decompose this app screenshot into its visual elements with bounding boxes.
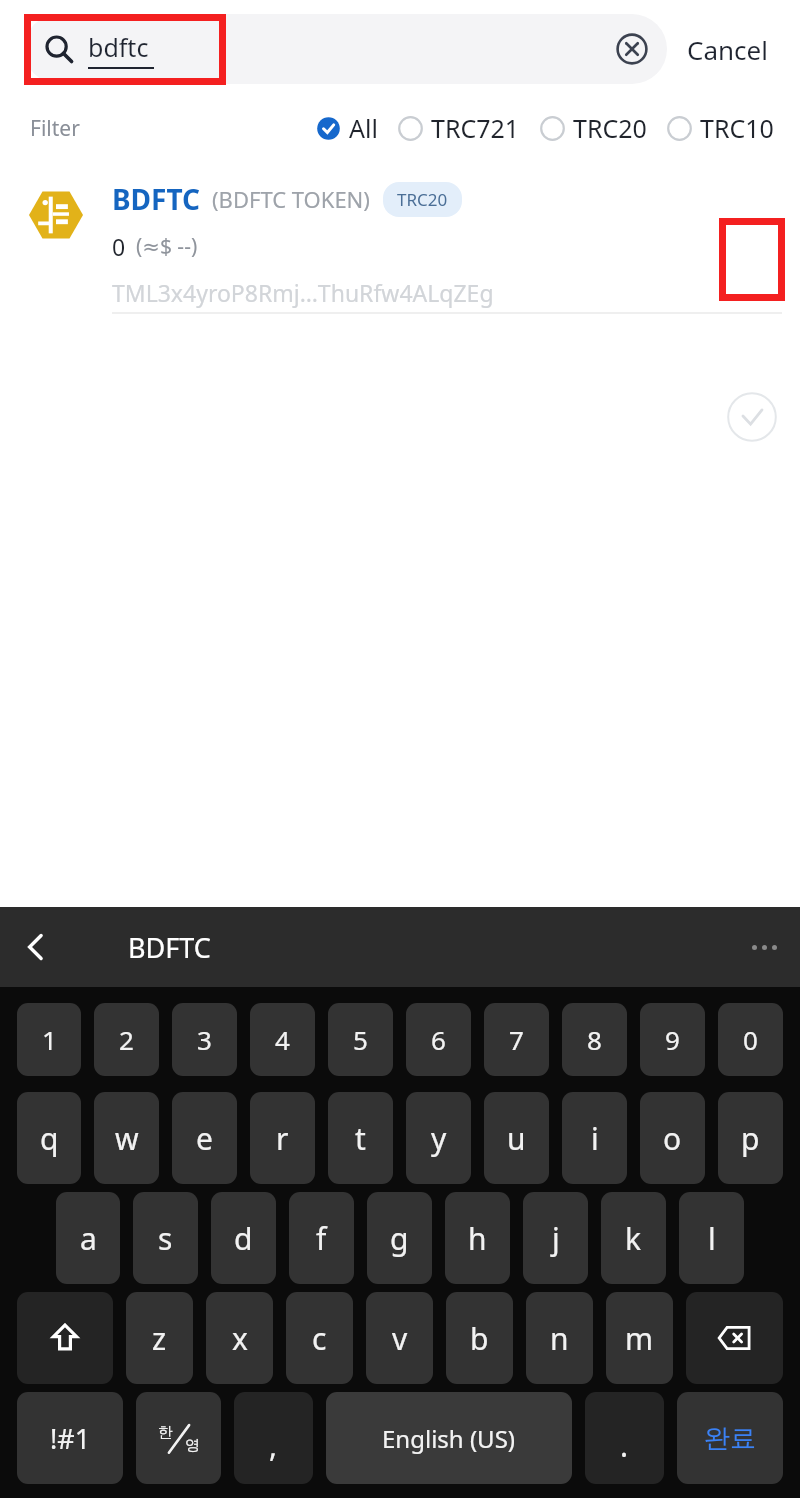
button[interactable]: 6 [406,1003,471,1076]
staticText: l [708,1218,716,1259]
staticText: 4 [275,1022,290,1057]
button[interactable]: 5 [328,1003,393,1076]
button[interactable]: English (US) [326,1392,572,1484]
button[interactable]: 1 [17,1003,81,1076]
staticText: f [316,1218,327,1259]
button[interactable]: Backspace [686,1292,783,1384]
staticText: b [470,1318,489,1359]
button[interactable]: Back [0,911,72,983]
staticText: 한 [158,1423,173,1442]
button[interactable]: e [172,1092,237,1184]
button[interactable]: 2 [94,1003,159,1076]
staticText: BDFTC [128,929,211,966]
button[interactable]: 9 [640,1003,705,1076]
button[interactable]: 완료 [677,1392,783,1484]
button[interactable]: l [679,1192,744,1284]
button[interactable]: h [445,1192,510,1284]
button[interactable]: r [250,1092,315,1184]
staticText: 6 [431,1022,446,1057]
staticText: TML3x4yroP8Rmj…ThuRfw4ALqZEg [112,277,494,308]
staticText: t [355,1118,366,1159]
button[interactable]: bdftc [24,14,667,84]
button[interactable]: TRC721 [398,103,520,153]
button[interactable]: TRC20 [540,103,647,153]
staticText: 8 [587,1022,602,1057]
staticText: English (US) [382,1422,516,1455]
button[interactable]: All [316,103,378,153]
button[interactable]: Clear search [607,24,657,74]
staticText: 9 [665,1022,680,1057]
staticText: o [663,1118,682,1159]
button[interactable]: j [523,1192,588,1284]
button[interactable]: w [94,1092,159,1184]
staticText: e [196,1118,213,1159]
button[interactable]: n [526,1292,593,1384]
button[interactable]: k [601,1192,666,1284]
button[interactable]: Select token [726,391,778,443]
staticText: (BDFTC TOKEN) [212,184,370,214]
staticText: 0 [743,1022,758,1057]
button[interactable]: y [406,1092,471,1184]
staticText: h [468,1218,487,1259]
staticText: 3 [197,1022,212,1057]
staticText: 영 [185,1436,200,1455]
button[interactable]: !#1 [17,1392,123,1484]
button[interactable]: 3 [172,1003,237,1076]
staticText: v [392,1318,408,1359]
staticText: . [620,1425,629,1466]
staticText: z [152,1318,167,1359]
staticText: y [431,1118,447,1159]
button[interactable]: TRC10 [667,103,774,153]
button[interactable]: x [206,1292,273,1384]
staticText: k [625,1218,642,1259]
button[interactable]: Change language [136,1392,221,1484]
button[interactable]: More options [728,911,800,983]
button[interactable]: v [366,1292,433,1384]
staticText: TRC20 [573,111,647,145]
staticText: (≈$ --) [136,232,198,261]
staticText: Filter [30,114,80,143]
staticText: r [276,1118,289,1159]
button[interactable]: p [718,1092,783,1184]
staticText: !#1 [50,1420,91,1457]
button[interactable]: m [606,1292,673,1384]
staticText: 5 [353,1022,368,1057]
staticText: Cancel [687,32,768,67]
button[interactable]: Shift [17,1292,113,1384]
staticText: 2 [119,1022,134,1057]
button[interactable]: . [585,1392,664,1484]
button[interactable]: c [286,1292,353,1384]
staticText: 완료 [704,1422,756,1455]
staticText: , [269,1425,278,1466]
staticText: a [80,1218,97,1259]
button[interactable]: f [289,1192,354,1284]
button[interactable]: 7 [484,1003,549,1076]
button[interactable]: Cancel [667,14,788,84]
staticText: n [550,1318,569,1359]
button[interactable]: b [446,1292,513,1384]
button[interactable]: d [211,1192,276,1284]
button[interactable]: a [56,1192,120,1284]
staticText: q [40,1118,59,1159]
staticText: 7 [509,1022,524,1057]
staticText: i [591,1118,599,1159]
button[interactable]: 4 [250,1003,315,1076]
button[interactable]: 0 [718,1003,783,1076]
button[interactable]: t [328,1092,393,1184]
button[interactable]: g [367,1192,432,1284]
button[interactable]: BDFTC [0,158,800,326]
button[interactable]: i [562,1092,627,1184]
button[interactable]: o [640,1092,705,1184]
button[interactable]: z [126,1292,193,1384]
staticText: j [552,1218,560,1259]
button[interactable]: s [133,1192,198,1284]
button[interactable]: , [234,1392,313,1484]
staticText: u [507,1118,526,1159]
button[interactable]: 8 [562,1003,627,1076]
staticText: BDFTC [112,180,201,218]
button[interactable]: q [17,1092,81,1184]
staticText: TRC10 [700,111,774,145]
staticText: TRC20 [397,188,448,211]
button[interactable]: u [484,1092,549,1184]
staticText: p [741,1118,760,1159]
